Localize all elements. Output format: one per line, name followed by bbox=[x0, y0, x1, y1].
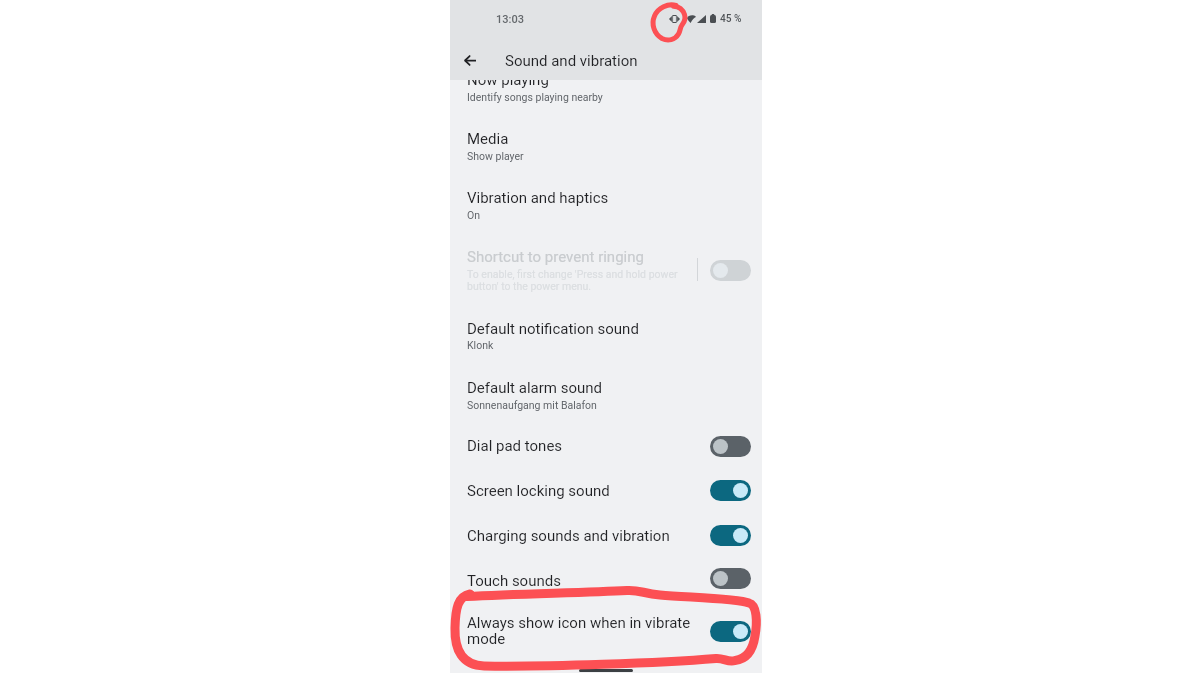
button[interactable]: Charging sounds and vibration bbox=[450, 512, 762, 557]
staticText: Identify songs playing nearby bbox=[467, 91, 603, 103]
staticText: Show player bbox=[467, 150, 524, 162]
button[interactable]: Screen locking sound bbox=[450, 468, 762, 512]
button[interactable]: Screen locking sound bbox=[710, 480, 751, 501]
button[interactable]: Vibration and haptics bbox=[450, 173, 762, 232]
staticText: Screen locking sound bbox=[467, 482, 610, 500]
button[interactable]: Dial pad tones bbox=[450, 424, 762, 468]
staticText: Klonk bbox=[467, 339, 494, 351]
staticText: On bbox=[467, 209, 481, 221]
staticText: Shortcut to prevent ringing bbox=[467, 248, 644, 266]
staticText: Default alarm sound bbox=[467, 379, 602, 397]
button[interactable]: Now playing bbox=[450, 66, 762, 114]
staticText: Now playing bbox=[467, 71, 549, 89]
button[interactable]: Back bbox=[454, 44, 486, 76]
staticText: Sonnenaufgang mit Balafon bbox=[467, 399, 597, 411]
staticText: Sound and vibration bbox=[505, 52, 638, 70]
button[interactable]: Media bbox=[450, 114, 762, 173]
staticText: button' to the power menu. bbox=[467, 280, 592, 292]
staticText: Vibration and haptics bbox=[467, 189, 609, 207]
button[interactable]: Touch sounds bbox=[450, 557, 762, 602]
button[interactable]: Default notification sound bbox=[450, 303, 762, 362]
staticText: To enable, first change 'Press and hold … bbox=[467, 268, 678, 280]
staticText: Media bbox=[467, 130, 509, 148]
staticText: Touch sounds bbox=[467, 572, 561, 590]
staticText: mode bbox=[467, 630, 506, 648]
button[interactable]: Shortcut to prevent ringing bbox=[450, 232, 762, 303]
staticText: Default notification sound bbox=[467, 320, 639, 338]
staticText: Charging sounds and vibration bbox=[467, 527, 670, 545]
button[interactable]: Default alarm sound bbox=[450, 362, 762, 424]
staticText: Dial pad tones bbox=[467, 437, 563, 455]
button[interactable]: Always show icon when in vibrate bbox=[450, 602, 762, 664]
button[interactable]: Shortcut to prevent ringing bbox=[710, 260, 751, 281]
staticText: Always show icon when in vibrate bbox=[467, 614, 691, 632]
staticText: 45 % bbox=[720, 13, 742, 25]
button[interactable]: Always show icon when in vibrate mode bbox=[710, 621, 751, 642]
button[interactable]: Charging sounds and vibration bbox=[710, 525, 751, 546]
staticText: 13:03 bbox=[496, 13, 524, 26]
button[interactable]: Dial pad tones bbox=[710, 436, 751, 457]
button[interactable]: Touch sounds bbox=[710, 568, 751, 589]
